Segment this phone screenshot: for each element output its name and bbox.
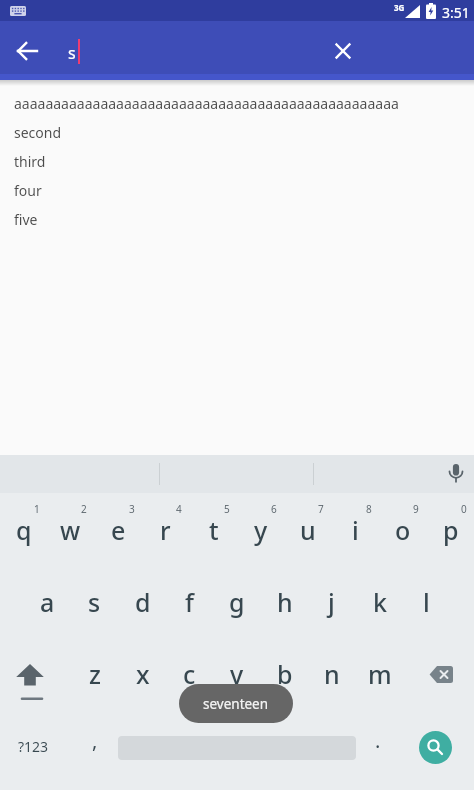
staticText: k (373, 585, 387, 619)
staticText: b (277, 657, 293, 691)
staticText: n (324, 657, 340, 691)
staticText: 9 (413, 502, 419, 516)
button[interactable]: y (237, 494, 284, 566)
staticText: . (375, 727, 381, 754)
staticText: r (160, 513, 171, 547)
button[interactable]: aaaaaaaaaaaaaaaaaaaaaaaaaaaaaaaaaaaaaaaa… (0, 89, 474, 118)
staticText: ?123 (18, 737, 49, 756)
button[interactable]: z (71, 638, 118, 710)
staticText: w (60, 513, 81, 547)
staticText: 3 (129, 502, 135, 516)
button[interactable]: four (0, 176, 474, 205)
button[interactable] (6, 641, 61, 713)
button[interactable]: o (379, 494, 426, 566)
staticText: x (136, 657, 150, 691)
staticText: four (14, 181, 42, 200)
staticText: 4 (176, 502, 182, 516)
staticText: 1 (34, 502, 40, 516)
staticText: 0 (461, 502, 467, 516)
staticText: five (14, 210, 38, 229)
button[interactable]: n (308, 638, 355, 710)
button[interactable]: t (190, 494, 237, 566)
button[interactable]: , (75, 707, 115, 773)
staticText: v (230, 657, 244, 691)
staticText: c (183, 657, 196, 691)
staticText: m (368, 657, 392, 691)
staticText: 7 (318, 502, 324, 516)
button[interactable]: second (0, 118, 474, 147)
button[interactable] (437, 455, 474, 493)
button[interactable]: v (213, 638, 260, 710)
button[interactable]: w (47, 494, 94, 566)
button[interactable]: g (213, 566, 260, 638)
staticText: y (254, 513, 268, 547)
staticText: o (395, 513, 411, 547)
button[interactable]: third (0, 147, 474, 176)
button[interactable]: q (0, 494, 47, 566)
staticText: a (40, 585, 55, 619)
button[interactable] (419, 731, 452, 764)
button[interactable]: r (142, 494, 189, 566)
staticText: f (185, 585, 194, 619)
staticText: third (14, 152, 46, 171)
button[interactable]: s (71, 566, 118, 638)
staticText: s (88, 585, 101, 619)
button[interactable]: j (308, 566, 355, 638)
button[interactable]: m (356, 638, 403, 710)
staticText: q (16, 513, 32, 547)
button[interactable]: d (119, 566, 166, 638)
staticText: e (111, 513, 126, 547)
button[interactable]: c (166, 638, 213, 710)
staticText: i (352, 513, 359, 547)
staticText: l (423, 585, 430, 619)
button[interactable]: f (166, 566, 213, 638)
button[interactable]: x (119, 638, 166, 710)
staticText: p (443, 513, 459, 547)
button[interactable]: five (0, 205, 474, 234)
button[interactable]: k (356, 566, 403, 638)
button[interactable]: l (403, 566, 450, 638)
button[interactable]: a (24, 566, 71, 638)
button[interactable]: p (427, 494, 474, 566)
button[interactable]: ?123 (6, 713, 61, 779)
staticText: 3G (394, 2, 405, 13)
staticText: d (135, 585, 151, 619)
staticText: 5 (224, 502, 230, 516)
staticText: second (14, 123, 62, 142)
staticText: 2 (81, 502, 87, 516)
staticText: 3:51 (442, 3, 470, 22)
button[interactable]: h (261, 566, 308, 638)
staticText: , (92, 727, 98, 754)
button[interactable]: . (360, 707, 396, 773)
staticText: j (328, 585, 335, 619)
staticText: u (300, 513, 316, 547)
staticText: g (229, 585, 245, 619)
staticText: 6 (271, 502, 277, 516)
staticText: h (277, 585, 293, 619)
button[interactable] (319, 27, 367, 75)
button[interactable]: b (261, 638, 308, 710)
button[interactable] (3, 27, 51, 75)
staticText: seventeen (203, 695, 269, 713)
staticText: z (89, 657, 101, 691)
button[interactable]: i (332, 494, 379, 566)
staticText: t (209, 513, 219, 547)
staticText: s (68, 42, 76, 64)
button[interactable] (413, 638, 468, 710)
button[interactable]: u (284, 494, 331, 566)
button[interactable]: e (95, 494, 142, 566)
staticText: 8 (366, 502, 372, 516)
staticText: aaaaaaaaaaaaaaaaaaaaaaaaaaaaaaaaaaaaaaaa… (14, 94, 399, 113)
